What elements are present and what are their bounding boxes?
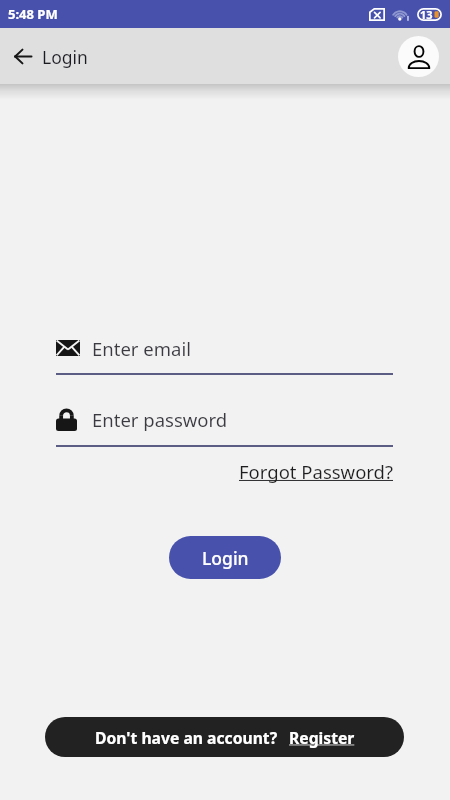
staticText: Login [202, 546, 249, 570]
staticText: Register [289, 727, 355, 748]
button[interactable]: Login [169, 536, 281, 579]
staticText: 5:48 PM [8, 5, 58, 23]
button[interactable]: Don't have an account? [45, 717, 404, 757]
staticText: Enter password [92, 407, 228, 432]
staticText: Don't have an account? [95, 727, 278, 748]
button[interactable]: Back [3, 36, 43, 76]
staticText: Login [42, 45, 88, 69]
button[interactable]: Profile [398, 36, 439, 77]
staticText: Enter email [92, 336, 191, 361]
button[interactable]: Forgot Password? [239, 459, 394, 484]
button[interactable]: Enter email [56, 331, 393, 365]
button[interactable]: Register [289, 727, 355, 748]
staticText: 13 [420, 7, 433, 22]
staticText: Forgot Password? [239, 459, 394, 484]
button[interactable]: Enter password [56, 402, 393, 436]
